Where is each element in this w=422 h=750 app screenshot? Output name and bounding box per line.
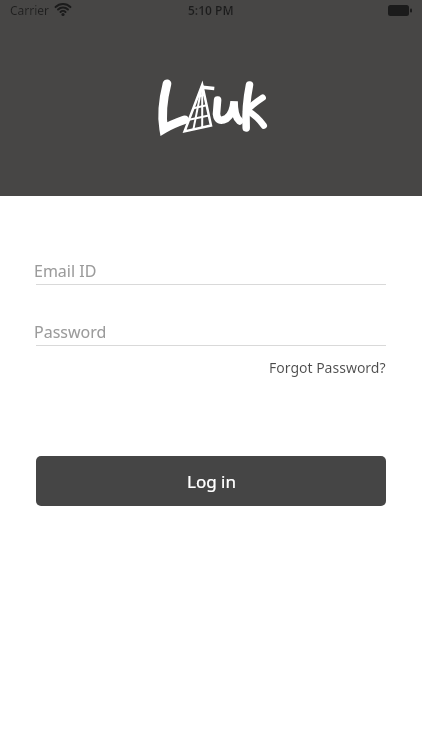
staticText: 5:10 PM <box>188 2 234 18</box>
staticText: Email ID <box>34 260 97 282</box>
button[interactable]: Log in <box>36 456 386 506</box>
button[interactable]: Forgot Password? <box>263 352 392 383</box>
staticText: Forgot Password? <box>269 358 386 377</box>
staticText: Password <box>34 321 107 343</box>
staticText: Log in <box>187 470 236 493</box>
staticText: Carrier <box>10 2 50 18</box>
